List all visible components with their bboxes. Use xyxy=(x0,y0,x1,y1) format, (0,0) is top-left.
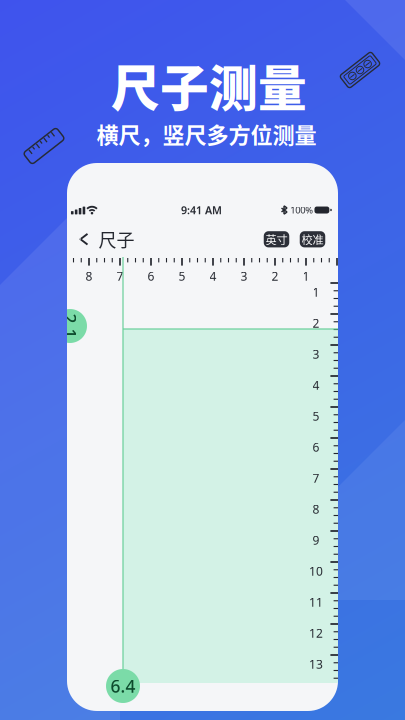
button[interactable]: 校准 xyxy=(300,231,325,247)
staticText: 5 xyxy=(312,408,319,424)
staticText: 11 xyxy=(309,594,323,610)
staticText: 6 xyxy=(312,439,319,455)
staticText: 13 xyxy=(309,656,323,672)
staticText: 2 xyxy=(271,268,278,284)
staticText: 8 xyxy=(85,268,92,284)
button[interactable]: 英寸 xyxy=(264,231,289,247)
staticText: 尺子测量 xyxy=(111,50,307,120)
staticText: 7 xyxy=(116,268,123,284)
staticText: 7 xyxy=(312,470,319,486)
staticText: 横尺，竖尺多方位测量 xyxy=(96,117,316,149)
staticText: 8 xyxy=(312,501,319,517)
staticText: 100% xyxy=(290,204,313,216)
staticText: 9:41 AM xyxy=(181,203,222,217)
button[interactable]: 尺子 xyxy=(66,217,147,261)
staticText: 6 xyxy=(147,268,154,284)
staticText: 12 xyxy=(309,625,323,641)
staticText: 2 xyxy=(312,315,319,331)
staticText: 1 xyxy=(312,284,319,300)
staticText: 4 xyxy=(209,268,216,284)
staticText: 3 xyxy=(312,346,319,362)
staticText: 英寸 xyxy=(265,231,287,247)
staticText: 10 xyxy=(309,563,323,579)
staticText: 6.4 xyxy=(110,674,135,697)
staticText: 5 xyxy=(178,268,185,284)
staticText: 3 xyxy=(240,268,247,284)
staticText: 9 xyxy=(312,532,319,548)
staticText: 尺子 xyxy=(98,226,134,252)
staticText: 2.1 xyxy=(57,314,82,337)
staticText: 校准 xyxy=(301,231,323,247)
staticText: 4 xyxy=(312,377,319,393)
staticText: 1 xyxy=(302,268,309,284)
